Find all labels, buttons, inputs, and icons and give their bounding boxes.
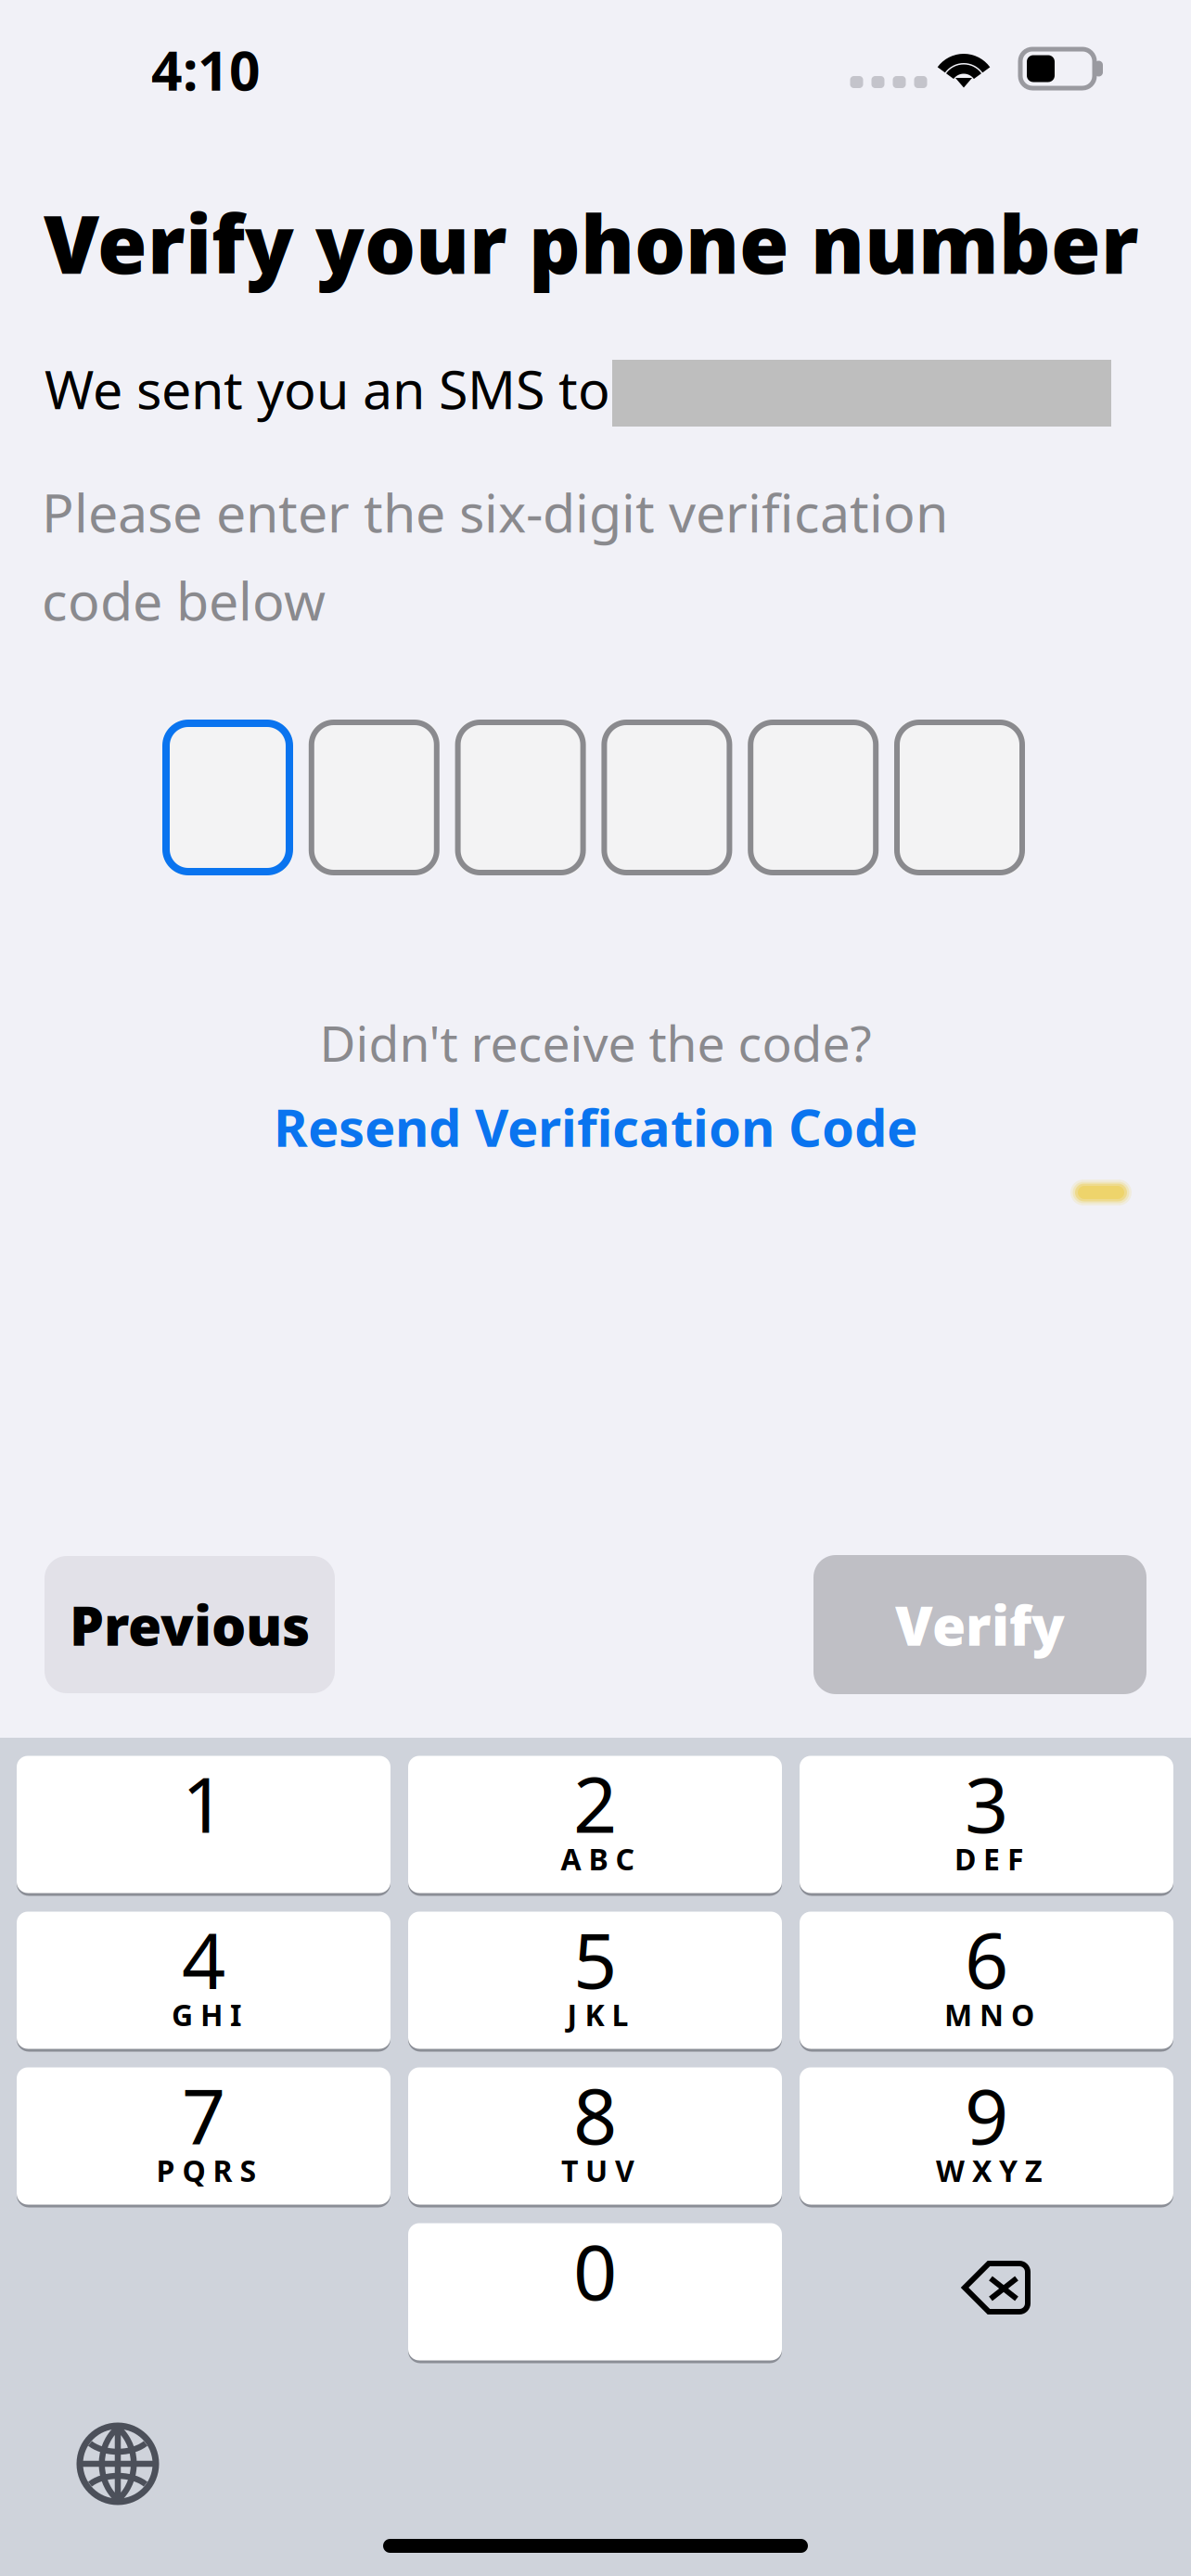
staticText: Verify	[895, 1588, 1065, 1661]
staticText: 5	[573, 1908, 617, 2010]
staticText: 9	[965, 2064, 1008, 2166]
button[interactable]: Resend Verification Code	[243, 1096, 948, 1157]
staticText: D E F	[954, 1839, 1024, 1878]
staticText: J K L	[567, 1995, 628, 2034]
staticText: P Q R S	[156, 2151, 256, 2190]
button[interactable]: Verification code digit 6	[894, 720, 1025, 875]
staticText: G H I	[172, 1995, 241, 2034]
staticText: Previous	[70, 1588, 310, 1661]
button[interactable]: 2	[408, 1754, 782, 1894]
staticText: 8	[573, 2064, 617, 2166]
staticText: 6	[965, 1908, 1008, 2010]
staticText: Resend Verification Code	[274, 1092, 917, 1161]
staticText: T U V	[561, 2151, 634, 2190]
button[interactable]: 4	[17, 1910, 391, 2050]
staticText: M N O	[944, 1995, 1034, 2034]
button[interactable]: 7	[17, 2066, 391, 2206]
button[interactable]: 6	[800, 1910, 1173, 2050]
button[interactable]: Previous	[45, 1556, 335, 1693]
button[interactable]: 3	[800, 1754, 1173, 1894]
button[interactable]: 1	[17, 1754, 391, 1894]
button[interactable]: 5	[408, 1910, 782, 2050]
button[interactable]: Verification code digit 1	[162, 720, 293, 875]
staticText: We sent you an SMS to	[45, 353, 610, 424]
button[interactable]: Verify	[813, 1555, 1146, 1694]
staticText: 4	[182, 1908, 225, 2010]
staticText: 0	[573, 2220, 617, 2321]
staticText: A B C	[561, 1839, 635, 1878]
staticText: code below	[42, 565, 326, 635]
staticText: 1	[182, 1752, 225, 1854]
staticText: Verify your phone number	[44, 189, 1139, 296]
staticText: 4:10	[151, 33, 261, 106]
button[interactable]: Verification code digit 3	[455, 720, 586, 875]
button[interactable]: 9	[800, 2066, 1173, 2206]
staticText: Didn't receive the code?	[320, 1010, 871, 1075]
button[interactable]: Verification code digit 4	[601, 720, 732, 875]
button[interactable]: Verification code digit 5	[748, 720, 879, 875]
staticText: 3	[965, 1752, 1008, 1854]
staticText: Please enter the six-digit verification	[42, 477, 948, 547]
button[interactable]: 8	[408, 2066, 782, 2206]
staticText: W X Y Z	[936, 2151, 1043, 2190]
button[interactable]: 0	[408, 2222, 782, 2362]
button[interactable]: Next keyboard	[53, 2408, 183, 2519]
button[interactable]: Verification code digit 2	[309, 720, 439, 875]
staticText: 7	[182, 2064, 225, 2166]
staticText: 2	[573, 1752, 617, 1854]
button[interactable]: Delete	[800, 2222, 1173, 2362]
